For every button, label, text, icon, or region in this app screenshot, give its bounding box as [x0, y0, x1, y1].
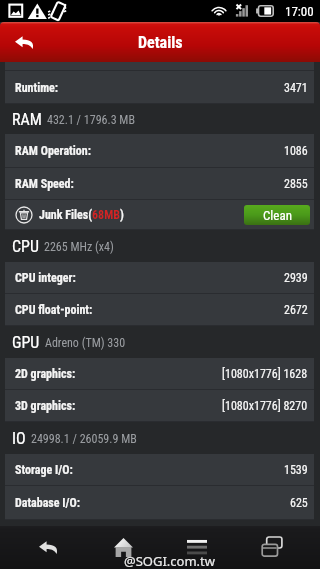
staticText: Database I/O:: [15, 496, 81, 510]
staticText: Clean: [263, 208, 292, 223]
button[interactable]: Database I/O:: [5, 486, 314, 520]
button[interactable]: RAM Speed:: [5, 168, 314, 200]
staticText: CPU float-point:: [15, 303, 93, 317]
button[interactable]: CPU float-point:: [5, 294, 314, 326]
staticText: 17:00: [285, 4, 314, 19]
button[interactable]: Back: [21, 526, 75, 568]
staticText: 3471: [284, 81, 308, 95]
staticText: RAM Speed:: [15, 177, 74, 191]
button[interactable]: Menu: [170, 526, 224, 568]
button[interactable]: Recents: [245, 526, 299, 568]
button[interactable]: Back: [0, 22, 48, 62]
button[interactable]: CPU integer:: [5, 262, 314, 294]
staticText: 2672: [284, 303, 308, 317]
staticText: Runtime:: [15, 81, 59, 95]
staticText: 1539: [284, 463, 308, 477]
staticText: [1080x1776] 1628: [222, 367, 308, 381]
staticText: 625: [290, 496, 308, 510]
button[interactable]: Junk Files(68MB): [5, 200, 314, 230]
button[interactable]: Runtime:: [5, 71, 314, 104]
staticText: @SOGI.com.tw: [124, 552, 215, 569]
button[interactable]: RAM Operation:: [5, 134, 314, 168]
staticText: Adreno (TM) 330: [45, 336, 126, 350]
staticText: 2D graphics:: [15, 367, 76, 381]
staticText: Storage I/O:: [15, 463, 73, 477]
staticText: CPU: [12, 237, 39, 256]
staticText: Junk Files(68MB): [39, 208, 124, 222]
staticText: Details: [138, 33, 183, 52]
staticText: GPU: [12, 333, 40, 352]
staticText: CPU integer:: [15, 271, 76, 285]
staticText: 24998.1 / 26059.9 MB: [31, 432, 137, 446]
button[interactable]: 3D graphics:: [5, 390, 314, 422]
button[interactable]: Storage I/O:: [5, 454, 314, 486]
staticText: 2855: [284, 177, 308, 191]
button[interactable]: Clean: [244, 205, 310, 225]
staticText: 3D graphics:: [15, 399, 76, 413]
staticText: RAM Operation:: [15, 144, 91, 158]
staticText: 2939: [284, 271, 308, 285]
button[interactable]: Home: [96, 526, 150, 568]
staticText: 2265 MHz (x4): [44, 240, 114, 254]
staticText: 1086: [284, 144, 308, 158]
staticText: 432.1 / 1796.3 MB: [47, 113, 135, 127]
staticText: RAM: [12, 110, 42, 129]
staticText: [1080x1776] 8270: [222, 399, 308, 413]
button[interactable]: 2D graphics:: [5, 358, 314, 390]
staticText: IO: [12, 429, 26, 448]
